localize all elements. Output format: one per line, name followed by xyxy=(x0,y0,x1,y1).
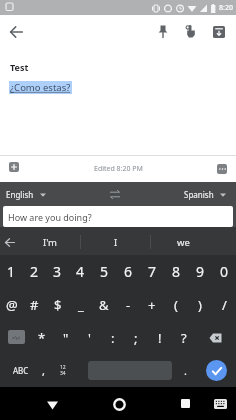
button[interactable]: * xyxy=(30,321,54,354)
button[interactable]: 8 xyxy=(164,255,188,288)
staticText: 1 xyxy=(7,262,16,281)
button[interactable]: ? xyxy=(172,321,196,354)
button[interactable]: English xyxy=(6,189,46,200)
staticText: $ xyxy=(54,296,62,314)
staticText: Edited 8:20 PM xyxy=(94,164,143,174)
staticText: 8:20 xyxy=(219,3,233,13)
staticText: ) xyxy=(198,296,202,314)
button[interactable]: ) xyxy=(188,288,212,321)
button[interactable]: ( xyxy=(164,288,188,321)
button[interactable]: 3 xyxy=(46,255,69,288)
staticText: 12 34 xyxy=(60,364,66,377)
staticText: we xyxy=(177,236,190,249)
staticText: : xyxy=(111,329,115,347)
staticText: Spanish xyxy=(184,189,214,200)
button[interactable]: - xyxy=(116,288,140,321)
button[interactable]: I xyxy=(81,229,150,255)
button[interactable] xyxy=(0,229,20,255)
button[interactable]: " xyxy=(54,321,78,354)
button[interactable] xyxy=(212,396,228,412)
staticText: / xyxy=(222,296,227,314)
button[interactable]: ; xyxy=(124,321,148,354)
staticText: ABC xyxy=(13,365,29,376)
staticText: - xyxy=(126,296,131,314)
button[interactable]: : xyxy=(101,321,125,354)
staticText: 2 xyxy=(30,262,39,281)
staticText: + xyxy=(148,296,156,314)
staticText: =\< xyxy=(12,334,21,341)
staticText: I'm xyxy=(43,236,57,249)
button[interactable]: ! xyxy=(148,321,172,354)
button[interactable] xyxy=(111,396,127,412)
button[interactable] xyxy=(44,397,60,413)
button[interactable] xyxy=(217,164,227,174)
button[interactable] xyxy=(8,24,24,40)
staticText: 6 xyxy=(124,262,133,281)
button[interactable]: $ xyxy=(46,288,69,321)
button[interactable]: @ xyxy=(0,288,23,321)
button[interactable] xyxy=(212,25,225,38)
staticText: * xyxy=(38,329,46,347)
button[interactable]: + xyxy=(140,288,164,321)
button[interactable]: 12 34 xyxy=(52,354,73,387)
button[interactable]: we xyxy=(151,229,215,255)
button[interactable]: ' xyxy=(77,321,101,354)
button[interactable]: & xyxy=(92,288,116,321)
staticText: 5 xyxy=(100,262,109,281)
staticText: @ xyxy=(6,296,18,314)
staticText: 4 xyxy=(76,262,85,281)
button[interactable] xyxy=(206,360,227,381)
button[interactable] xyxy=(195,321,236,354)
button[interactable]: / xyxy=(212,288,236,321)
staticText: , xyxy=(42,363,45,378)
staticText: ; xyxy=(134,329,138,347)
staticText: 8 xyxy=(172,262,181,281)
button[interactable]: , xyxy=(33,354,53,387)
staticText: _ xyxy=(78,296,84,314)
staticText: 7 xyxy=(148,262,157,281)
button[interactable]: . xyxy=(175,354,195,387)
button[interactable]: # xyxy=(23,288,46,321)
staticText: ¿Como estas? xyxy=(10,81,71,94)
staticText: I xyxy=(114,236,118,249)
button[interactable] xyxy=(9,162,19,172)
button[interactable]: 5 xyxy=(92,255,116,288)
staticText: 0 xyxy=(220,262,229,281)
button[interactable]: Spanish xyxy=(184,189,226,200)
button[interactable]: 4 xyxy=(69,255,92,288)
button[interactable]: 7 xyxy=(140,255,164,288)
staticText: " xyxy=(63,329,69,347)
staticText: Test xyxy=(10,61,29,73)
staticText: 9 xyxy=(196,262,205,281)
button[interactable]: 6 xyxy=(116,255,140,288)
staticText: ! xyxy=(158,329,162,347)
staticText: ' xyxy=(88,329,91,347)
button[interactable]: 2 xyxy=(23,255,46,288)
button[interactable]: 9 xyxy=(188,255,212,288)
button[interactable]: =\< xyxy=(8,330,25,344)
button[interactable]: How are you doing? xyxy=(3,206,233,227)
staticText: 3 xyxy=(53,262,62,281)
staticText: # xyxy=(30,296,39,314)
staticText: English xyxy=(6,189,34,200)
button[interactable]: ABC xyxy=(6,354,36,387)
button[interactable] xyxy=(184,25,197,38)
staticText: & xyxy=(99,296,109,314)
staticText: ( xyxy=(174,296,178,314)
staticText: ? xyxy=(181,329,187,347)
button[interactable] xyxy=(156,25,169,38)
button[interactable] xyxy=(107,186,123,202)
button[interactable]: 0 xyxy=(212,255,236,288)
staticText: How are you doing? xyxy=(8,211,92,223)
button[interactable]: I'm xyxy=(20,229,80,255)
button[interactable]: 1 xyxy=(0,255,23,288)
button[interactable]: _ xyxy=(69,288,92,321)
staticText: . xyxy=(184,363,187,378)
button[interactable] xyxy=(178,396,192,410)
